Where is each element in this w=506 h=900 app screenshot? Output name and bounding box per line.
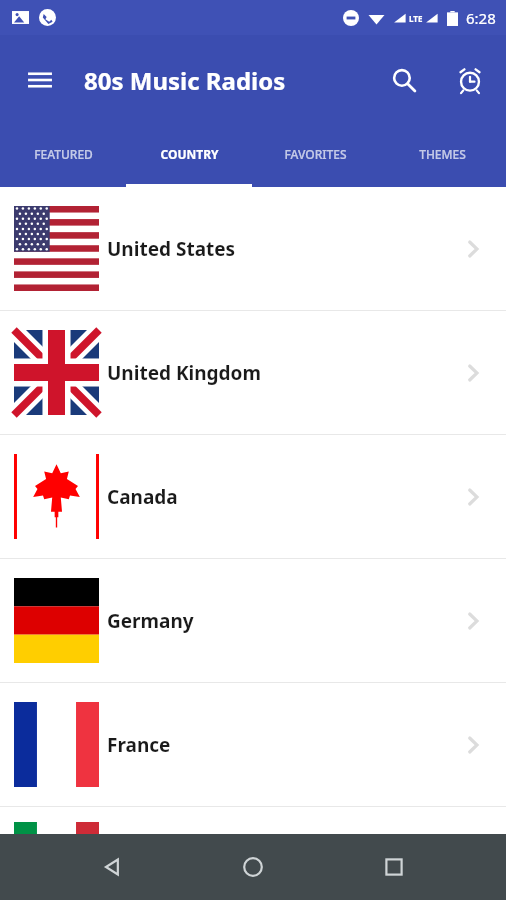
staticText: France <box>107 732 171 758</box>
button[interactable]: Canada <box>0 435 506 558</box>
staticText: FEATURED <box>34 146 93 162</box>
staticText: United Kingdom <box>107 360 261 386</box>
staticText: FAVORITES <box>284 146 347 162</box>
button[interactable]: United Kingdom <box>0 311 506 434</box>
staticText: Germany <box>107 608 194 634</box>
button[interactable]: Open navigation menu <box>18 58 62 102</box>
staticText: THEMES <box>419 146 466 162</box>
button[interactable]: Back <box>85 839 141 895</box>
button[interactable]: Recent apps <box>366 839 422 895</box>
staticText: Canada <box>107 484 178 510</box>
button[interactable]: FAVORITES <box>252 125 379 187</box>
staticText: LTE <box>409 13 423 24</box>
button[interactable]: Germany <box>0 559 506 682</box>
button[interactable] <box>0 807 506 834</box>
button[interactable]: COUNTRY <box>126 125 252 187</box>
button[interactable]: FEATURED <box>0 125 126 187</box>
button[interactable]: France <box>0 683 506 806</box>
staticText: 6:28 <box>466 8 496 28</box>
button[interactable]: Alarm <box>446 56 494 104</box>
staticText: 80s Music Radios <box>84 64 286 97</box>
staticText: COUNTRY <box>160 146 219 162</box>
button[interactable]: THEMES <box>379 125 506 187</box>
button[interactable]: United States <box>0 187 506 310</box>
button[interactable]: Search <box>380 56 428 104</box>
staticText: United States <box>107 236 236 262</box>
button[interactable]: Home <box>225 839 281 895</box>
